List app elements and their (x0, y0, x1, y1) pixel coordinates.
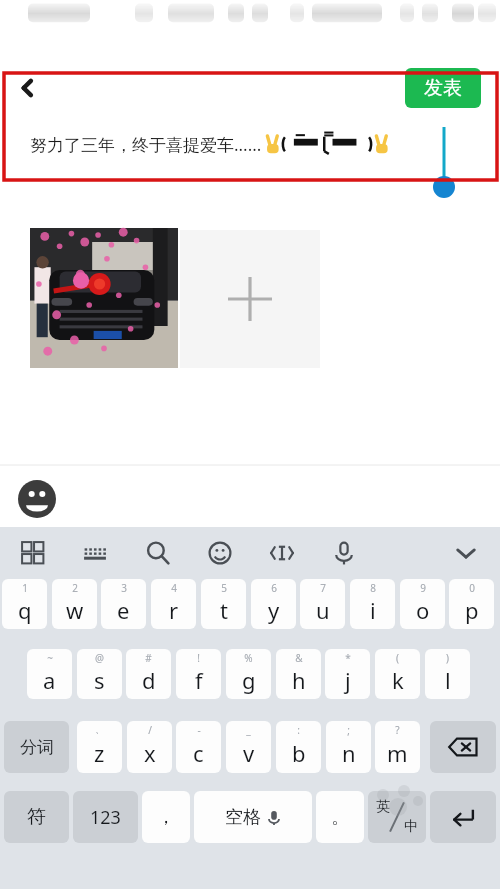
button[interactable]: # (126, 649, 171, 699)
staticText: _ (246, 723, 251, 737)
button[interactable]: Keyboard layout (73, 531, 117, 575)
button[interactable]: Emoji (15, 477, 59, 521)
button[interactable]: Clipboard (260, 531, 304, 575)
button[interactable]: Apps (11, 531, 55, 575)
staticText: u (316, 595, 330, 625)
staticText: t (220, 595, 228, 625)
button[interactable]: Search (136, 531, 180, 575)
button[interactable]: ! (176, 649, 221, 699)
button[interactable]: ， (142, 791, 190, 843)
staticText: 2 (72, 581, 78, 595)
button[interactable]: - (176, 721, 221, 773)
staticText: o (416, 595, 430, 625)
button[interactable]: & (276, 649, 321, 699)
staticText: # (145, 651, 152, 665)
staticText: 。 (331, 806, 349, 829)
button[interactable]: Back (8, 68, 48, 108)
staticText: q (18, 595, 32, 625)
staticText: - (197, 723, 201, 737)
button[interactable]: 5 (201, 579, 246, 629)
staticText: 空格 (225, 806, 261, 829)
staticText: z (94, 738, 105, 768)
staticText: 发表 (424, 76, 462, 100)
staticText: i (370, 595, 376, 625)
staticText: ~ (47, 651, 53, 665)
button[interactable]: @ (77, 649, 122, 699)
staticText: 0 (469, 581, 475, 595)
staticText: 英 (376, 798, 390, 816)
staticText: 符 (27, 805, 46, 829)
button[interactable]: 8 (350, 579, 395, 629)
button[interactable]: Voice input (322, 531, 366, 575)
staticText: f (195, 665, 203, 695)
button[interactable]: ~ (27, 649, 72, 699)
staticText: / (148, 723, 152, 737)
staticText: k (392, 665, 404, 695)
staticText: & (295, 651, 303, 665)
button[interactable]: % (226, 649, 271, 699)
staticText: 分词 (20, 737, 54, 758)
button[interactable]: Enter (430, 791, 496, 843)
staticText: l (445, 665, 451, 695)
staticText: @ (95, 651, 104, 665)
button[interactable]: 发表 (405, 68, 481, 108)
staticText: d (142, 665, 156, 695)
staticText: : (297, 723, 300, 737)
staticText: ; (347, 723, 350, 737)
button[interactable]: 、 (77, 721, 122, 773)
button[interactable]: Hide keyboard (444, 531, 488, 575)
button[interactable]: 1 (2, 579, 47, 629)
staticText: % (244, 651, 253, 665)
staticText: 中 (404, 818, 418, 836)
staticText: 4 (171, 581, 177, 595)
button[interactable]: 空格 (194, 791, 312, 843)
staticText: v (243, 738, 255, 768)
button[interactable]: * (325, 649, 370, 699)
button[interactable]: 0 (449, 579, 494, 629)
button[interactable]: / (127, 721, 172, 773)
button[interactable]: 4 (151, 579, 196, 629)
button[interactable]: _ (226, 721, 271, 773)
staticText: n (342, 738, 356, 768)
staticText: 6 (271, 581, 277, 595)
button[interactable]: : (276, 721, 321, 773)
staticText: j (345, 665, 351, 695)
button[interactable]: 努力了三年，终于喜提爱车...... (0, 103, 500, 210)
staticText: 1 (22, 581, 28, 595)
staticText: g (242, 665, 256, 695)
staticText: ) (446, 651, 449, 665)
button[interactable]: 分词 (4, 721, 69, 773)
staticText: 努力了三年，终于喜提爱车...... (30, 133, 262, 156)
button[interactable]: 7 (300, 579, 345, 629)
staticText: m (387, 738, 408, 768)
button[interactable]: 6 (251, 579, 296, 629)
staticText: ( (396, 651, 399, 665)
button[interactable]: 。 (316, 791, 364, 843)
staticText: e (117, 595, 130, 625)
button[interactable]: 符 (4, 791, 69, 843)
staticText: 3 (121, 581, 127, 595)
button[interactable]: ) (425, 649, 470, 699)
staticText: y (268, 595, 280, 625)
button[interactable]: Backspace (430, 721, 496, 773)
staticText: p (465, 595, 479, 625)
button[interactable]: ( (375, 649, 420, 699)
staticText: c (193, 738, 204, 768)
staticText: 、 (95, 723, 105, 736)
button[interactable]: 2 (52, 579, 97, 629)
button[interactable]: ; (326, 721, 371, 773)
button[interactable]: 123 (73, 791, 138, 843)
staticText: x (144, 738, 156, 768)
staticText: ! (197, 651, 200, 665)
staticText: 8 (370, 581, 376, 595)
staticText: w (66, 595, 84, 625)
staticText: b (292, 738, 306, 768)
button[interactable]: Switch language (368, 791, 426, 843)
button[interactable]: ? (375, 721, 420, 773)
button[interactable]: 3 (101, 579, 146, 629)
button[interactable]: Emoji (198, 531, 242, 575)
button[interactable]: 9 (400, 579, 445, 629)
button[interactable]: Add photo (180, 230, 320, 368)
staticText: * (345, 651, 351, 665)
staticText: h (292, 665, 306, 695)
